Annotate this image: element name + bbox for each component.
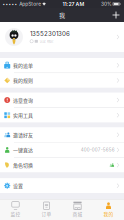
staticText: 邀请好友: [13, 131, 33, 138]
staticText: 设置: [13, 182, 23, 189]
staticText: 角色切换: [13, 161, 33, 169]
staticText: 违章查询: [13, 96, 33, 104]
button[interactable]: 邀请好友: [0, 127, 124, 142]
staticText: 11:27 AM: [62, 1, 84, 7]
staticText: 一键直达: [13, 146, 33, 153]
button[interactable]: 设置: [0, 178, 124, 193]
staticText: 我的规则: [13, 77, 33, 84]
staticText: 我的: [103, 210, 113, 217]
staticText: 认证: [39, 39, 45, 44]
button[interactable]: 违章查询: [0, 93, 124, 107]
button[interactable]: 我的追单: [0, 58, 124, 73]
staticText: 我: [59, 11, 65, 19]
button[interactable]: 订单: [31, 199, 62, 220]
button[interactable]: 一键直达: [0, 143, 124, 157]
staticText: 监控: [10, 210, 20, 217]
staticText: 绑定: [47, 39, 53, 44]
button[interactable]: 13552301306: [0, 22, 124, 52]
staticText: AppStore: [18, 1, 41, 7]
button[interactable]: 监控: [0, 199, 31, 220]
staticText: 订单: [41, 210, 51, 217]
staticText: •••••: [3, 1, 18, 7]
button[interactable]: 角色切换: [0, 158, 124, 172]
button[interactable]: 我的规则: [0, 73, 124, 88]
button[interactable]: 实用工具: [0, 108, 124, 122]
staticText: 商城: [72, 210, 82, 217]
staticText: 我的追单: [13, 62, 33, 69]
button[interactable]: Add: [108, 8, 124, 22]
staticText: 实用工具: [13, 112, 33, 119]
button[interactable]: 商城: [62, 199, 93, 220]
staticText: 30%: [101, 1, 112, 7]
staticText: 13552301306: [30, 30, 70, 38]
button[interactable]: 我的: [93, 199, 124, 220]
staticText: 400-007-5656: [81, 147, 115, 153]
